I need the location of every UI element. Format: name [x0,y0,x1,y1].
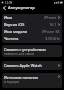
staticText: Аккумулятор [8,5,35,11]
button[interactable]: Частота [2,35,62,42]
staticText: Частота [4,36,19,41]
staticText: iPhone SE [42,29,60,34]
staticText: iPhone [44,15,57,20]
button[interactable]: Источник питания [2,73,62,88]
staticText: Имя модели [4,29,28,34]
staticText: и зарядка [4,80,20,84]
staticText: 3.05GHz [45,36,60,41]
staticText: 12:09 [5,1,13,5]
staticText: Связать с устройством [4,47,46,52]
staticText: Связать Apple Watch [4,63,42,68]
button[interactable]: Связать с устройством [2,45,62,57]
staticText: нажмите для связи [4,52,34,56]
staticText: 16.1 [49,22,57,27]
staticText: Версия iOS [4,22,25,27]
button[interactable]: Версия iOS [2,21,62,28]
staticText: Имя [4,15,12,20]
staticText: Источник питания [4,75,39,80]
button[interactable]: Имя [2,14,62,21]
button[interactable]: Back [0,4,8,12]
button[interactable]: Имя модели [2,28,62,35]
button[interactable]: Связать Apple Watch [2,61,62,70]
